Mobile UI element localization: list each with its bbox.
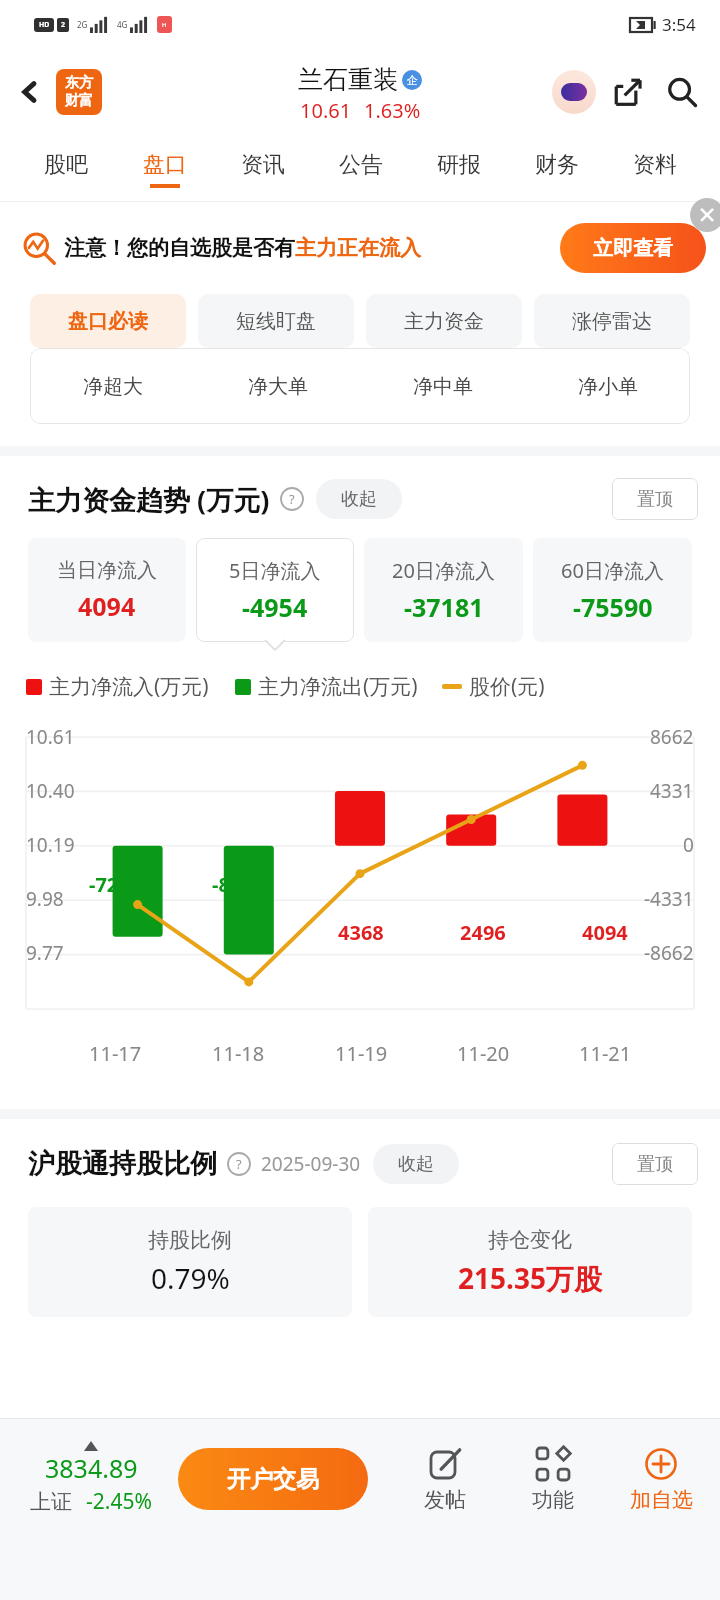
staticText: 11-19 xyxy=(335,1040,388,1067)
staticText: 2496 xyxy=(460,919,506,946)
button[interactable]: Close xyxy=(686,202,720,236)
staticText: 短线盯盘 xyxy=(236,309,316,334)
staticText: 3834.89 xyxy=(45,1451,138,1485)
button[interactable]: 主力资金 xyxy=(366,294,522,348)
staticText: 置顶 xyxy=(637,488,673,511)
staticText: 3:54 xyxy=(662,13,696,36)
button[interactable]: 置顶 xyxy=(612,478,698,520)
staticText: 收起 xyxy=(398,1153,434,1176)
button[interactable]: 立即查看 xyxy=(560,223,706,273)
button[interactable]: 20日净流入 xyxy=(364,538,523,642)
staticText: 净超大 xyxy=(83,374,143,399)
button[interactable]: 置顶 xyxy=(612,1143,698,1185)
button[interactable]: 短线盯盘 xyxy=(198,294,354,348)
button[interactable]: 净大单 xyxy=(195,348,360,424)
button[interactable]: 60日净流入 xyxy=(533,538,692,642)
staticText: 主力正在流入 xyxy=(295,235,421,261)
staticText: 2025-09-30 xyxy=(261,1151,361,1177)
button[interactable]: 3834.89 xyxy=(16,1441,166,1516)
button[interactable]: 研报 xyxy=(410,136,508,202)
button[interactable]: 持仓变化 xyxy=(368,1207,692,1317)
button[interactable]: Search xyxy=(658,68,706,116)
button[interactable]: 开户交易 xyxy=(178,1448,368,1510)
staticText: 4094 xyxy=(582,919,628,946)
button[interactable]: 加自选 xyxy=(618,1445,704,1513)
button[interactable]: 当日净流入 xyxy=(28,538,186,642)
staticText: 沪股通持股比例 xyxy=(28,1147,217,1181)
button[interactable]: 盘口必读 xyxy=(30,294,186,348)
staticText: 4094 xyxy=(78,589,136,623)
button[interactable]: 持股比例 xyxy=(28,1207,352,1317)
button[interactable]: 净超大 xyxy=(30,348,195,424)
staticText: 发帖 xyxy=(424,1487,466,1513)
staticText: 0.79% xyxy=(151,1259,230,1297)
staticText: 股价(元) xyxy=(469,672,545,701)
button[interactable]: 涨停雷达 xyxy=(534,294,690,348)
button[interactable]: 公告 xyxy=(312,136,410,202)
button[interactable]: 财务 xyxy=(508,136,606,202)
button[interactable]: 功能 xyxy=(510,1445,596,1513)
staticText: ? xyxy=(236,1155,242,1173)
staticText: 11-21 xyxy=(579,1040,632,1067)
staticText: 10.61 xyxy=(26,724,75,750)
staticText: -4331 xyxy=(644,886,694,912)
button[interactable]: 股吧 xyxy=(16,136,115,202)
staticText: -8662 xyxy=(644,940,694,966)
staticText: 11-17 xyxy=(89,1040,142,1067)
staticText: 215.35万股 xyxy=(458,1259,602,1297)
staticText: 2 xyxy=(61,20,66,30)
staticText: 主力净流出(万元) xyxy=(258,672,418,701)
staticText: 财务 xyxy=(535,151,579,179)
staticText: 公告 xyxy=(339,151,383,179)
staticText: 涨停雷达 xyxy=(572,309,652,334)
staticText: 20日净流入 xyxy=(392,557,495,584)
staticText: 主力资金 xyxy=(404,309,484,334)
button[interactable]: Help xyxy=(227,1152,251,1176)
button[interactable]: 资料 xyxy=(606,136,704,202)
staticText: 净小单 xyxy=(578,374,638,399)
staticText: 0 xyxy=(683,832,694,858)
staticText: -4954 xyxy=(242,590,308,624)
staticText: 股吧 xyxy=(44,151,88,179)
staticText: 收起 xyxy=(341,488,377,511)
staticText: 60日净流入 xyxy=(561,557,664,584)
button[interactable]: AI Assistant xyxy=(550,68,598,116)
button[interactable]: Share xyxy=(604,68,652,116)
button[interactable]: 5日净流入 xyxy=(196,538,354,642)
button[interactable]: 净小单 xyxy=(525,348,690,424)
staticText: 8662 xyxy=(650,724,694,750)
staticText: -37181 xyxy=(404,590,484,624)
staticText: 财富 xyxy=(65,92,93,110)
button[interactable]: 收起 xyxy=(316,479,402,519)
staticText: 持仓变化 xyxy=(488,1227,572,1253)
staticText: -2.45% xyxy=(86,1487,152,1516)
button[interactable]: Back xyxy=(6,68,54,116)
button[interactable]: East Money xyxy=(56,69,102,115)
staticText: 企 xyxy=(407,73,418,87)
staticText: 东方 xyxy=(65,74,93,92)
button[interactable]: 盘口 xyxy=(115,136,214,202)
staticText: 主力资金趋势 (万元) xyxy=(28,481,270,518)
staticText: 资料 xyxy=(633,151,677,179)
staticText: 2G xyxy=(77,19,88,30)
button[interactable]: 资讯 xyxy=(214,136,312,202)
button[interactable]: 发帖 xyxy=(402,1445,488,1513)
staticText: 加自选 xyxy=(630,1487,693,1513)
staticText: 持股比例 xyxy=(148,1227,232,1253)
staticText: 4331 xyxy=(650,778,694,804)
staticText: 开户交易 xyxy=(227,1465,319,1494)
staticText: 10.40 xyxy=(26,778,75,804)
staticText: 研报 xyxy=(437,151,481,179)
staticText: 净中单 xyxy=(413,374,473,399)
button[interactable]: Help xyxy=(280,487,304,511)
button[interactable]: 收起 xyxy=(373,1144,459,1184)
staticText: 9.77 xyxy=(26,940,64,966)
button[interactable]: 注意！您的自选股是否有 xyxy=(22,202,706,294)
staticText: 9.98 xyxy=(26,886,64,912)
staticText: 主力净流入(万元) xyxy=(49,672,209,701)
staticText: H xyxy=(162,21,167,29)
staticText: ? xyxy=(289,490,295,508)
button[interactable]: 净中单 xyxy=(360,348,525,424)
staticText: 1.63% xyxy=(364,97,421,124)
staticText: -7250 xyxy=(89,871,142,898)
